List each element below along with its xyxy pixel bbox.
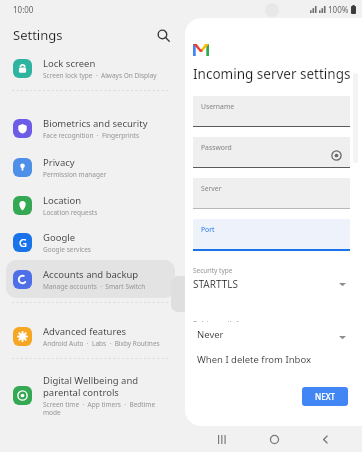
button[interactable]: Digital Wellbeing and parental controls — [6, 372, 175, 418]
staticText: NEXT — [315, 391, 336, 402]
staticText: Server — [201, 184, 222, 193]
staticText: Digital Wellbeing and parental controls — [43, 374, 167, 399]
staticText: Screen time · App timers · Bedtime mode — [43, 400, 167, 417]
staticText: Google services — [43, 245, 91, 254]
button[interactable]: G — [6, 226, 175, 258]
button[interactable]: Username — [193, 96, 350, 129]
staticText: Password — [201, 143, 232, 152]
staticText: STARTTLS — [193, 277, 239, 291]
staticText: Port — [201, 225, 215, 234]
button[interactable]: Biometrics and security — [6, 110, 175, 146]
staticText: Never — [197, 328, 224, 341]
button[interactable]: Accounts and backup — [6, 260, 175, 298]
button[interactable]: Port — [193, 219, 350, 252]
staticText: Screen lock type · Always On Display — [43, 71, 157, 80]
button[interactable]: Never — [190, 322, 329, 346]
staticText: Google — [43, 231, 76, 244]
staticText: When I delete from Inbox — [197, 353, 311, 366]
staticText: 100% — [328, 4, 349, 15]
staticText: Settings — [13, 26, 63, 44]
staticText: Permission manager — [43, 170, 107, 179]
staticText: Location — [43, 194, 82, 207]
button[interactable]: Home — [259, 426, 289, 452]
staticText: Incoming server settings — [193, 65, 351, 83]
staticText: Manage accounts · Smart Switch — [43, 282, 146, 291]
button[interactable]: Advanced features — [6, 318, 175, 354]
button[interactable]: Privacy — [6, 150, 175, 184]
button[interactable]: Location — [6, 188, 175, 222]
button[interactable]: Search — [152, 24, 174, 46]
staticText: Android Auto · Labs · Bixby Routines — [43, 339, 160, 348]
button[interactable]: Back — [310, 426, 340, 452]
staticText: Advanced features — [43, 325, 127, 338]
staticText: Face recognition · Fingerprints — [43, 131, 140, 140]
button[interactable]: Show password — [330, 149, 343, 162]
staticText: Delete emails from server — [193, 319, 272, 328]
staticText: Privacy — [43, 156, 75, 169]
button[interactable]: Lock screen — [6, 50, 175, 86]
button[interactable]: Server — [193, 178, 350, 211]
button[interactable]: Security type — [193, 266, 350, 296]
staticText: Username — [201, 102, 235, 111]
staticText: G — [19, 235, 27, 250]
button[interactable]: NEXT — [302, 387, 348, 406]
staticText: Accounts and backup — [43, 268, 139, 281]
button[interactable]: Recents — [207, 426, 237, 452]
staticText: Biometrics and security — [43, 117, 148, 130]
button[interactable]: Password — [193, 137, 350, 170]
staticText: Security type — [193, 266, 233, 275]
button[interactable]: When I delete from Inbox — [190, 347, 329, 371]
staticText: Location requests — [43, 208, 98, 217]
staticText: 10:00 — [13, 4, 34, 15]
staticText: Lock screen — [43, 57, 96, 70]
